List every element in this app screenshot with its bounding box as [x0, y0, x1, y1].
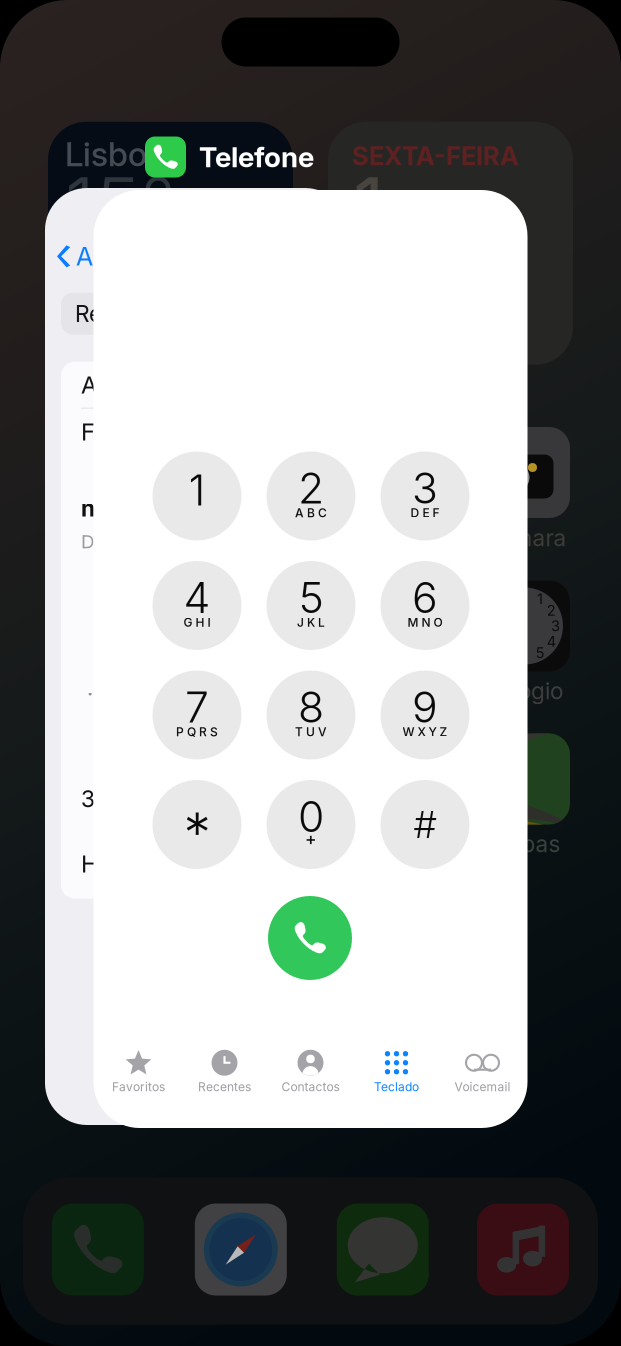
staticText: 5 [298, 572, 323, 623]
staticText: J K L [297, 615, 325, 630]
staticText: # [414, 802, 436, 847]
staticText: + [305, 828, 317, 849]
staticText: G H I [183, 615, 210, 630]
staticText: Telefone [199, 140, 314, 174]
button[interactable]: 8 [266, 670, 355, 759]
staticText: A B C [295, 506, 327, 520]
staticText: T U V [295, 725, 327, 739]
button[interactable]: Messages [337, 1203, 429, 1295]
staticText: Histórico [81, 849, 181, 878]
staticText: 1 [537, 590, 543, 608]
staticText: Ativar [81, 370, 146, 399]
staticText: 0 [298, 791, 324, 842]
staticText: Recentes [198, 1080, 251, 1094]
button[interactable]: 9 [380, 670, 469, 759]
staticText: · [87, 681, 93, 708]
button[interactable]: 0 [266, 780, 355, 869]
staticText: Voicemail [454, 1080, 510, 1094]
staticText: 1 [353, 158, 384, 252]
button[interactable]: Music [477, 1203, 569, 1295]
staticText: SEXTA-FEIRA [352, 141, 519, 171]
staticText: 2 [298, 462, 324, 514]
staticText: Teclado [374, 1080, 419, 1094]
staticText: 6 [412, 572, 438, 623]
staticText: M N O [407, 615, 442, 630]
staticText: 15° [64, 158, 175, 252]
staticText: 9 [412, 681, 438, 733]
staticText: 7 [185, 681, 209, 733]
staticText: * [183, 799, 210, 865]
staticText: Relógio [486, 677, 563, 705]
button[interactable]: 3 [380, 451, 469, 540]
staticText: Dados [81, 530, 136, 553]
button[interactable]: 1 [152, 451, 241, 540]
staticText: 3 [412, 462, 438, 514]
button[interactable]: Contactos [267, 1048, 353, 1096]
staticText: Ficheiro [81, 417, 170, 446]
staticText: 2 [547, 602, 556, 619]
staticText: P Q R S [176, 725, 218, 739]
button[interactable]: # [380, 780, 469, 869]
staticText: Câmara [482, 524, 566, 552]
staticText: Ana [76, 241, 122, 272]
staticText: 8 [298, 681, 324, 733]
staticText: 5 [535, 644, 544, 662]
button[interactable]: Voicemail [439, 1048, 525, 1096]
staticText: Lisboa [65, 134, 165, 174]
button[interactable]: 2 [266, 451, 355, 540]
staticText: D E F [410, 506, 439, 520]
staticText: Contactos [281, 1080, 339, 1094]
button[interactable]: Recentes [181, 1048, 267, 1096]
button[interactable]: Favoritos [95, 1048, 181, 1096]
staticText: 4 [183, 572, 210, 623]
staticText: 3 [81, 785, 95, 813]
button[interactable]: Phone [52, 1203, 144, 1295]
staticText: nome [81, 495, 143, 522]
button[interactable]: 6 [380, 561, 469, 650]
button[interactable]: Call [268, 896, 352, 980]
staticText: W X Y Z [402, 725, 447, 739]
button[interactable]: Teclado [353, 1048, 439, 1096]
button[interactable]: 4 [152, 561, 241, 650]
button[interactable]: Safari [195, 1203, 287, 1295]
button[interactable]: 5 [266, 561, 355, 650]
staticText: Mapas [488, 830, 560, 858]
staticText: Favoritos [112, 1080, 165, 1094]
staticText: 4 [547, 633, 556, 650]
staticText: Repetir [75, 300, 149, 327]
staticText: 3 [551, 617, 560, 635]
button[interactable]: 7 [152, 670, 241, 759]
button[interactable]: * [152, 780, 241, 869]
staticText: 1 [188, 464, 205, 516]
